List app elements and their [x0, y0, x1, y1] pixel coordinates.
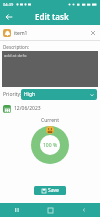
- button[interactable]: High: [21, 89, 97, 100]
- button[interactable]: 12/06/2023: [3, 104, 41, 113]
- staticText: add at defo: [4, 53, 27, 59]
- button[interactable]: Back: [67, 203, 100, 217]
- staticText: Save: [48, 187, 59, 194]
- staticText: item1: [14, 30, 28, 37]
- button[interactable]: Recent apps: [0, 203, 34, 217]
- button[interactable]: Save: [34, 186, 66, 195]
- staticText: Description:: [3, 44, 29, 50]
- staticText: Current: [41, 117, 59, 124]
- staticText: 100 %: [43, 142, 58, 149]
- button[interactable]: Clear text: [88, 28, 97, 37]
- staticText: High: [24, 91, 36, 98]
- staticText: 04:39: [3, 2, 14, 7]
- button[interactable]: Back: [2, 10, 15, 23]
- button[interactable]: Home: [34, 203, 67, 217]
- staticText: Edit task: [35, 11, 69, 22]
- staticText: Priority:: [3, 91, 22, 98]
- button[interactable]: add at defo: [2, 51, 98, 87]
- staticText: 12/06/2023: [14, 105, 41, 112]
